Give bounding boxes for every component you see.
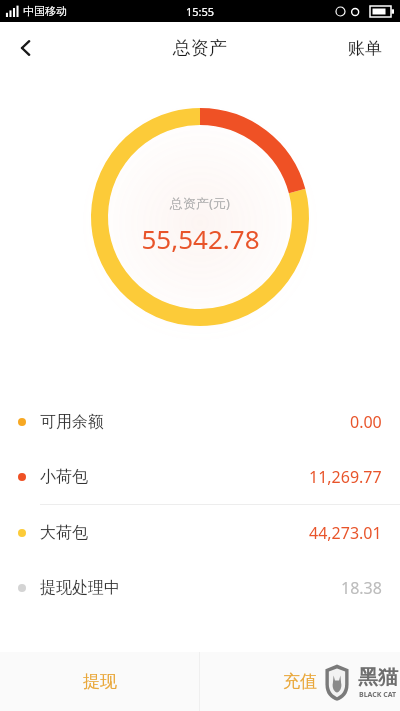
button[interactable]: 账单 <box>330 22 400 74</box>
staticText: 总资产(元) <box>170 194 230 212</box>
staticText: 44,273.01 <box>309 522 382 544</box>
staticText: 大荷包 <box>40 523 88 543</box>
staticText: BLACK CAT <box>359 690 397 700</box>
staticText: 黑猫 <box>358 665 398 690</box>
button[interactable]: 大荷包 <box>0 505 400 560</box>
staticText: 总资产 <box>173 37 227 60</box>
button[interactable]: 可用余额 <box>0 394 400 449</box>
button[interactable]: 小荷包 <box>0 449 400 504</box>
staticText: 18.38 <box>341 577 382 599</box>
button[interactable]: 提现处理中 <box>0 560 400 615</box>
staticText: 充值 <box>283 671 317 692</box>
staticText: 小荷包 <box>40 467 88 487</box>
staticText: 15:55 <box>186 4 215 19</box>
staticText: 提现 <box>83 671 117 692</box>
button[interactable]: 充值 <box>200 652 400 711</box>
button[interactable]: Back <box>0 22 52 74</box>
staticText: 0.00 <box>350 411 382 433</box>
staticText: 可用余额 <box>40 412 104 432</box>
staticText: 中国移动 <box>23 4 67 18</box>
staticText: 提现处理中 <box>40 578 120 598</box>
staticText: 55,542.78 <box>141 221 260 256</box>
button[interactable]: 提现 <box>0 652 199 711</box>
staticText: 账单 <box>348 38 382 59</box>
staticText: 11,269.77 <box>309 466 382 488</box>
